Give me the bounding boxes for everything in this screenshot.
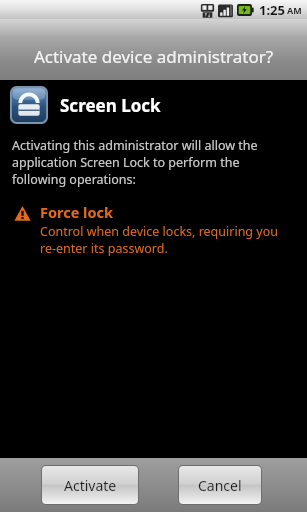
staticText: Activate xyxy=(64,476,117,495)
staticText: Force lock xyxy=(40,202,113,222)
staticText: Activate device administrator? xyxy=(0,45,307,68)
staticText: 1:25 xyxy=(259,1,285,19)
button[interactable]: Activate xyxy=(42,466,138,504)
button[interactable]: Cancel xyxy=(179,466,261,504)
staticText: Activating this administrator will allow… xyxy=(12,137,283,188)
staticText: Cancel xyxy=(198,476,242,495)
staticText: Control when device locks, requiring you… xyxy=(40,223,291,256)
staticText: Screen Lock xyxy=(60,94,161,117)
staticText: AM xyxy=(287,4,302,16)
